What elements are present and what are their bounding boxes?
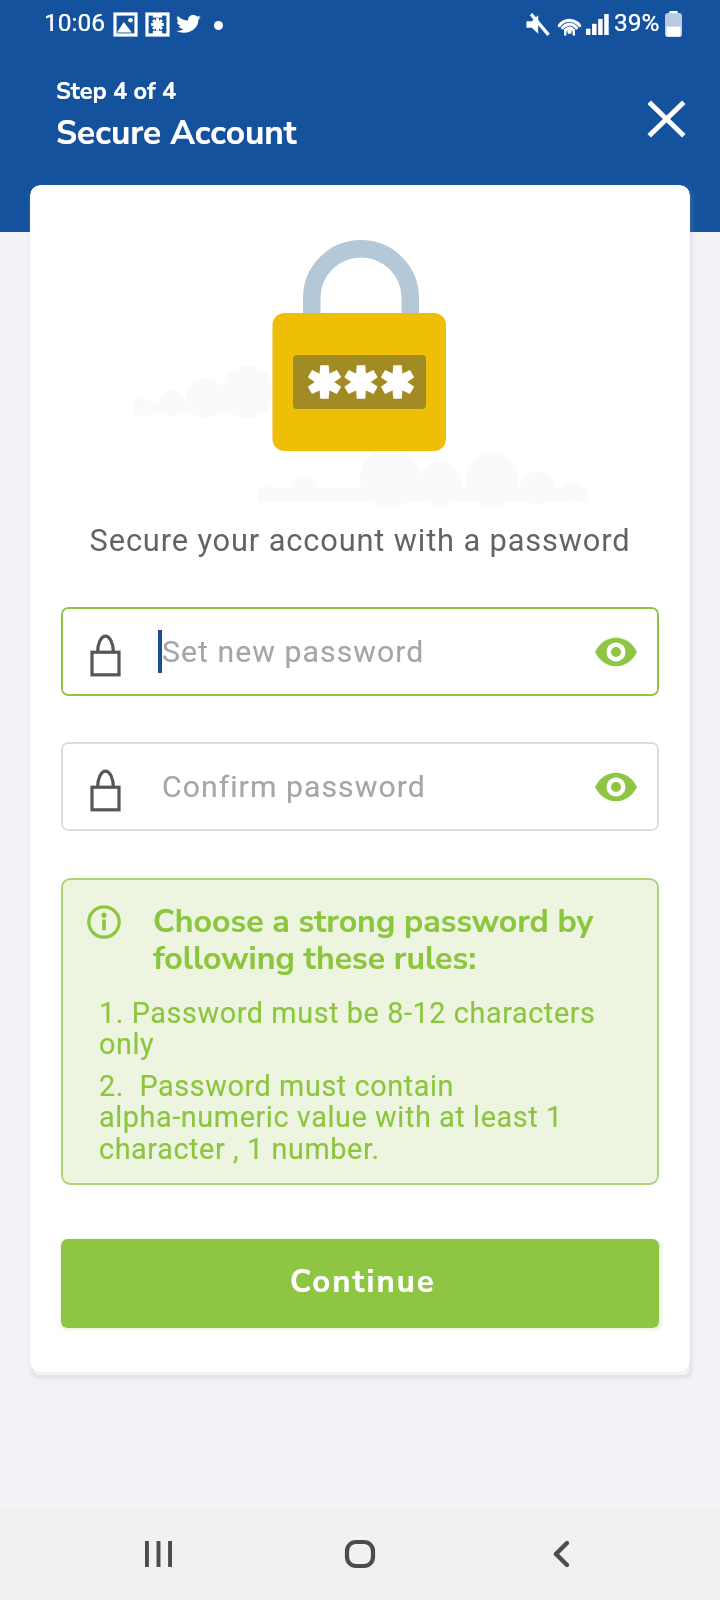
- staticText: Secure your account with a password: [30, 522, 690, 558]
- button[interactable]: Continue: [61, 1239, 659, 1328]
- button[interactable]: Show password: [586, 622, 646, 682]
- button[interactable]: Show password: [586, 757, 646, 817]
- button[interactable]: Confirm password: [61, 742, 659, 831]
- staticText: Set new password: [162, 634, 425, 669]
- button[interactable]: Close: [636, 88, 697, 149]
- staticText: 10:06: [44, 8, 106, 37]
- staticText: Continue: [290, 1260, 436, 1303]
- staticText: 2. Password must contain alpha-numeric v…: [99, 1069, 563, 1166]
- staticText: Choose a strong password by following th…: [153, 900, 594, 980]
- staticText: Secure Account: [56, 110, 297, 156]
- button[interactable]: Home: [320, 1517, 400, 1591]
- button[interactable]: Back: [521, 1517, 601, 1591]
- button[interactable]: Recent apps: [118, 1517, 198, 1591]
- staticText: 39%: [614, 8, 660, 37]
- staticText: Step 4 of 4: [56, 75, 177, 107]
- button[interactable]: Set new password: [61, 607, 659, 696]
- staticText: 1. Password must be 8-12 characters only: [99, 996, 596, 1061]
- staticText: Confirm password: [162, 769, 426, 804]
